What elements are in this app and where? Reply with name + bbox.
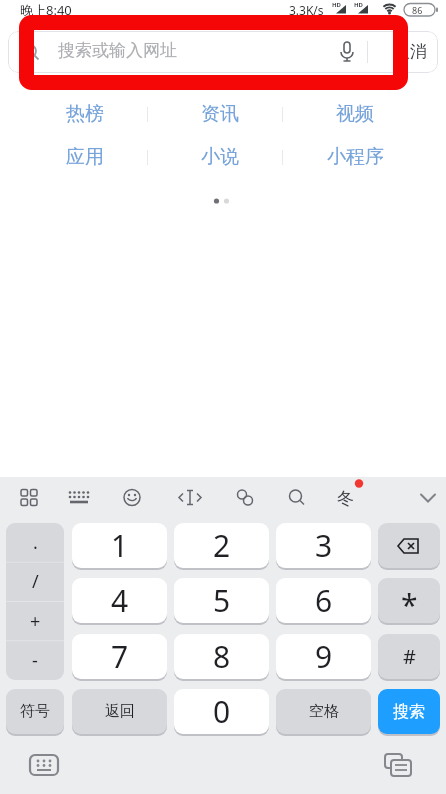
- staticText: 5: [213, 580, 231, 621]
- staticText: 4: [111, 580, 129, 621]
- button[interactable]: 9: [276, 634, 371, 679]
- staticText: 7: [111, 636, 129, 677]
- button[interactable]: 返回: [72, 689, 167, 734]
- button[interactable]: 资讯: [175, 100, 265, 128]
- button[interactable]: 2: [174, 523, 269, 568]
- staticText: HD: [332, 1, 341, 9]
- staticText: 符号: [20, 702, 50, 721]
- staticText: .: [33, 530, 38, 555]
- staticText: 1: [111, 525, 129, 566]
- staticText: +: [30, 609, 41, 634]
- staticText: 86: [412, 4, 423, 16]
- button[interactable]: #: [378, 634, 440, 679]
- staticText: 2: [213, 525, 231, 566]
- staticText: *: [401, 584, 418, 623]
- button[interactable]: 4: [72, 578, 167, 623]
- staticText: 0: [213, 691, 231, 732]
- staticText: 取消: [393, 41, 427, 62]
- button[interactable]: 3: [276, 523, 371, 568]
- button[interactable]: 小程序: [310, 143, 400, 171]
- button[interactable]: 空格: [276, 689, 371, 734]
- button[interactable]: *: [378, 578, 440, 623]
- staticText: HD: [354, 1, 363, 9]
- staticText: 3.3K/s: [289, 2, 324, 18]
- staticText: 视频: [336, 102, 374, 126]
- staticText: 应用: [66, 145, 104, 169]
- button[interactable]: 8: [174, 634, 269, 679]
- staticText: 搜索或输入网址: [58, 40, 177, 61]
- staticText: 冬: [337, 488, 354, 509]
- button[interactable]: 6: [276, 578, 371, 623]
- button[interactable]: 小说: [175, 143, 265, 171]
- button[interactable]: 符号: [6, 689, 64, 734]
- staticText: 搜索: [393, 702, 425, 722]
- button[interactable]: 1: [72, 523, 167, 568]
- staticText: 热榜: [66, 102, 104, 126]
- staticText: 资讯: [201, 102, 239, 126]
- button[interactable]: 应用: [40, 143, 130, 171]
- staticText: 空格: [309, 702, 339, 721]
- staticText: 8: [213, 636, 231, 677]
- staticText: 3: [315, 525, 333, 566]
- staticText: 晚上8:40: [20, 1, 72, 19]
- button[interactable]: 0: [174, 689, 269, 734]
- staticText: -: [32, 648, 38, 673]
- staticText: 9: [315, 636, 333, 677]
- button[interactable]: 搜索: [378, 689, 440, 734]
- button[interactable]: 热榜: [40, 100, 130, 128]
- staticText: #: [403, 643, 416, 670]
- button[interactable]: 5: [174, 578, 269, 623]
- button[interactable]: 搜索或输入网址: [8, 31, 438, 73]
- button[interactable]: 视频: [310, 100, 400, 128]
- staticText: 小程序: [327, 145, 384, 169]
- staticText: 小说: [201, 145, 239, 169]
- button[interactable]: 7: [72, 634, 167, 679]
- staticText: 6: [315, 580, 333, 621]
- button[interactable]: .: [6, 523, 64, 680]
- staticText: /: [32, 569, 39, 594]
- staticText: 返回: [105, 702, 135, 721]
- button[interactable]: [378, 523, 440, 568]
